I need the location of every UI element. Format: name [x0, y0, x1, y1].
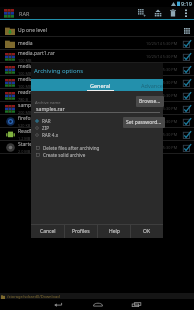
- staticText: Started.jpg: [18, 141, 44, 148]
- staticText: firefox.rar: [18, 115, 42, 122]
- staticText: 100 MB: [18, 84, 32, 89]
- button[interactable]: Select media: [182, 37, 191, 50]
- staticText: Advanced: [141, 82, 165, 89]
- staticText: 780 B: [18, 97, 28, 102]
- button[interactable]: firefox.rar: [0, 115, 194, 128]
- staticText: samples.rar: [18, 102, 46, 109]
- staticText: RAR 4.x: [42, 132, 59, 138]
- button[interactable]: ZIP: [35, 124, 49, 132]
- button[interactable]: Browse...: [136, 96, 164, 107]
- staticText: 10/25/14 5:30 PM: [146, 80, 178, 85]
- staticText: Up one level: [18, 27, 47, 34]
- button[interactable]: Select firefox.rar: [182, 115, 191, 128]
- button[interactable]: ReadMe.apk: [0, 128, 194, 141]
- button[interactable]: Profiles: [65, 225, 97, 238]
- button[interactable]: Cancel: [31, 225, 64, 238]
- staticText: Archive name: [35, 100, 61, 105]
- staticText: 9:19: [181, 0, 192, 7]
- staticText: General: [90, 82, 111, 89]
- button[interactable]: media: [0, 37, 194, 50]
- staticText: 10/25/14 5:30 PM: [146, 93, 178, 98]
- button[interactable]: RAR 4.x: [35, 131, 59, 139]
- button[interactable]: General: [84, 79, 116, 91]
- staticText: 10/25/14 5:30 PM: [146, 41, 178, 46]
- button[interactable]: Delete: [166, 7, 180, 19]
- staticText: 10/25/14 5:30 PM: [146, 132, 178, 137]
- button[interactable]: samples.rar: [0, 102, 194, 115]
- staticText: 10/25/14 5:30 PM: [146, 145, 178, 150]
- staticText: Browse...: [139, 98, 161, 105]
- staticText: 10/25/14 5:30 PM: [146, 119, 178, 124]
- button[interactable]: Select Started.jpg: [182, 141, 191, 154]
- button[interactable]: Back: [47, 299, 68, 310]
- button[interactable]: Create solid archive: [36, 151, 86, 159]
- button[interactable]: Extract: [150, 7, 166, 19]
- button[interactable]: More options: [180, 7, 192, 19]
- staticText: Delete files after archiving: [43, 145, 100, 151]
- button[interactable]: Home: [87, 299, 108, 310]
- button[interactable]: Help: [98, 225, 130, 238]
- staticText: 2.0 MB: [18, 149, 31, 154]
- staticText: media: [18, 40, 33, 47]
- staticText: Profiles: [72, 228, 90, 235]
- staticText: RAR: [42, 118, 51, 124]
- staticText: 1.2 MB: [18, 136, 31, 141]
- staticText: 10/25/14 5:30 PM: [146, 106, 178, 111]
- button[interactable]: Set password...: [123, 117, 165, 128]
- staticText: Cancel: [40, 228, 56, 235]
- staticText: readme.rar: [18, 89, 45, 96]
- staticText: 10/25/14 5:30 PM: [146, 54, 178, 59]
- staticText: 100 MB: [18, 71, 32, 76]
- button[interactable]: Delete files after archiving: [36, 144, 100, 152]
- button[interactable]: media.part3.rar: [0, 76, 194, 89]
- staticText: media.part2.rar: [18, 63, 55, 70]
- button[interactable]: media.part1.rar: [0, 50, 194, 63]
- staticText: 200 MB: [18, 110, 32, 115]
- button[interactable]: Add to archive: [134, 7, 150, 19]
- staticText: Set password...: [126, 119, 162, 126]
- button[interactable]: Select ReadMe.apk: [182, 128, 191, 141]
- staticText: Archiving options: [34, 67, 84, 75]
- staticText: 100 MB: [18, 58, 32, 63]
- button[interactable]: Select media.part2.rar: [182, 63, 191, 76]
- staticText: RAR: [19, 10, 30, 17]
- staticText: media.part3.rar: [18, 76, 55, 83]
- staticText: ZIP: [42, 125, 49, 131]
- button[interactable]: Select readme.rar: [182, 89, 191, 102]
- button[interactable]: readme.rar: [0, 89, 194, 102]
- button[interactable]: Select media.part3.rar: [182, 76, 191, 89]
- button[interactable]: Started.jpg: [0, 141, 194, 154]
- staticText: 10/25/14 5:30 PM: [146, 67, 178, 72]
- button[interactable]: Select samples.rar: [182, 102, 191, 115]
- staticText: Create solid archive: [43, 152, 86, 158]
- staticText: samples.rar: [36, 105, 65, 112]
- button[interactable]: Advanced: [141, 79, 165, 91]
- button[interactable]: OK: [131, 225, 163, 238]
- staticText: /storage/sdcard0/Download: [7, 294, 60, 299]
- staticText: Help: [109, 228, 120, 235]
- button[interactable]: Select media.part1.rar: [182, 50, 191, 63]
- button[interactable]: RAR: [35, 117, 51, 125]
- button[interactable]: Select Up one level: [182, 24, 191, 37]
- button[interactable]: Recent apps: [126, 299, 147, 310]
- button[interactable]: media.part2.rar: [0, 63, 194, 76]
- staticText: media.part1.rar: [18, 50, 55, 57]
- button[interactable]: Up one level: [0, 24, 194, 37]
- staticText: 520 KB: [18, 123, 31, 128]
- staticText: ReadMe.apk: [18, 128, 48, 135]
- staticText: OK: [143, 228, 151, 235]
